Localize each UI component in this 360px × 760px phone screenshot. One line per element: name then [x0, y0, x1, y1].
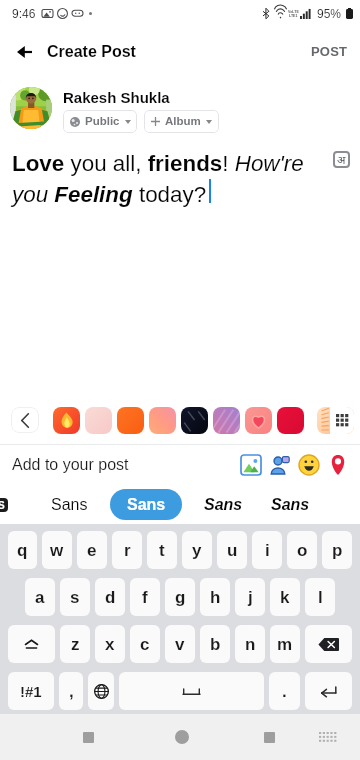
- staticText: Love you all, friends! How're you Feelin…: [12, 151, 312, 207]
- button[interactable]: ,: [59, 672, 83, 710]
- button[interactable]: v: [165, 625, 195, 663]
- staticText: f: [142, 588, 148, 607]
- button[interactable]: Tag people: [269, 454, 291, 476]
- button[interactable]: Background colour: [85, 407, 112, 434]
- staticText: z: [71, 635, 80, 654]
- button[interactable]: t: [147, 531, 177, 569]
- staticText: अ: [337, 152, 346, 167]
- staticText: ,: [69, 682, 74, 701]
- staticText: Add to your post: [12, 456, 129, 474]
- button[interactable]: a: [25, 578, 55, 616]
- button[interactable]: Home: [164, 719, 200, 755]
- button[interactable]: h: [200, 578, 230, 616]
- button[interactable]: Check in: [327, 454, 349, 476]
- staticText: Create Post: [47, 43, 136, 61]
- button[interactable]: Shift: [8, 625, 55, 663]
- button[interactable]: p: [322, 531, 352, 569]
- staticText: k: [280, 588, 290, 607]
- staticText: x: [105, 635, 115, 654]
- staticText: w: [50, 541, 64, 560]
- button[interactable]: Sans: [33, 489, 105, 520]
- staticText: Sans: [127, 496, 166, 514]
- staticText: LTE1: [289, 14, 298, 18]
- button[interactable]: Background colour: [117, 407, 144, 434]
- button[interactable]: Background colour: [245, 407, 272, 434]
- staticText: h: [210, 588, 221, 607]
- staticText: VoLTE: [288, 10, 299, 14]
- staticText: POST: [311, 44, 348, 59]
- staticText: s: [70, 588, 80, 607]
- staticText: j: [248, 588, 253, 607]
- staticText: o: [297, 541, 308, 560]
- staticText: .: [282, 682, 287, 701]
- button[interactable]: Background colour: [277, 407, 304, 434]
- staticText: n: [245, 635, 256, 654]
- button[interactable]: Public: [63, 110, 137, 133]
- staticText: Rakesh Shukla: [63, 89, 170, 106]
- button[interactable]: Sans: [110, 489, 182, 520]
- button[interactable]: u: [217, 531, 247, 569]
- button[interactable]: Recent apps: [70, 719, 106, 755]
- button[interactable]: q: [8, 531, 37, 569]
- staticText: a: [35, 588, 45, 607]
- button[interactable]: Background colour: [181, 407, 208, 434]
- button[interactable]: Photos: [240, 454, 262, 476]
- button[interactable]: Sans: [187, 489, 259, 520]
- button[interactable]: Space: [119, 672, 264, 710]
- staticText: !#1: [20, 683, 42, 700]
- button[interactable]: Feeling/Activity: [298, 454, 320, 476]
- button[interactable]: Background colour: [53, 407, 80, 434]
- button[interactable]: POST: [304, 38, 355, 65]
- button[interactable]: l: [305, 578, 335, 616]
- staticText: g: [175, 588, 186, 607]
- staticText: r: [124, 541, 131, 560]
- button[interactable]: k: [270, 578, 300, 616]
- button[interactable]: r: [112, 531, 142, 569]
- button[interactable]: w: [42, 531, 72, 569]
- button[interactable]: Hide keyboard: [310, 719, 346, 755]
- staticText: l: [318, 588, 323, 607]
- button[interactable]: Album: [144, 110, 219, 133]
- button[interactable]: f: [130, 578, 160, 616]
- button[interactable]: More backgrounds: [317, 407, 354, 434]
- button[interactable]: y: [182, 531, 212, 569]
- staticText: q: [17, 541, 28, 560]
- staticText: u: [227, 541, 238, 560]
- button[interactable]: Background colour: [149, 407, 176, 434]
- button[interactable]: d: [95, 578, 125, 616]
- button[interactable]: Change language: [88, 672, 114, 710]
- staticText: y: [192, 541, 202, 560]
- button[interactable]: Profile photo: [10, 87, 52, 129]
- button[interactable]: z: [60, 625, 90, 663]
- button[interactable]: Previous backgrounds: [11, 407, 39, 433]
- button[interactable]: Background colour: [213, 407, 240, 434]
- staticText: c: [140, 635, 150, 654]
- staticText: Public: [85, 115, 120, 128]
- button[interactable]: o: [287, 531, 317, 569]
- staticText: t: [159, 541, 165, 560]
- button[interactable]: !#1: [8, 672, 54, 710]
- button[interactable]: i: [252, 531, 282, 569]
- staticText: e: [87, 541, 97, 560]
- staticText: d: [105, 588, 116, 607]
- button[interactable]: c: [130, 625, 160, 663]
- button[interactable]: Bold and strikethrough: [0, 489, 28, 520]
- button[interactable]: Enter: [305, 672, 352, 710]
- button[interactable]: .: [269, 672, 300, 710]
- button[interactable]: Backspace: [305, 625, 352, 663]
- button[interactable]: b: [200, 625, 230, 663]
- button[interactable]: x: [95, 625, 125, 663]
- button[interactable]: j: [235, 578, 265, 616]
- button[interactable]: Back: [251, 719, 287, 755]
- staticText: v: [175, 635, 185, 654]
- button[interactable]: Sans: [264, 489, 316, 520]
- staticText: Sans: [204, 496, 243, 514]
- button[interactable]: m: [270, 625, 300, 663]
- button[interactable]: n: [235, 625, 265, 663]
- staticText: p: [332, 541, 343, 560]
- button[interactable]: s: [60, 578, 90, 616]
- button[interactable]: Transliterate: [333, 151, 350, 168]
- button[interactable]: g: [165, 578, 195, 616]
- button[interactable]: e: [77, 531, 107, 569]
- button[interactable]: Back: [9, 37, 39, 67]
